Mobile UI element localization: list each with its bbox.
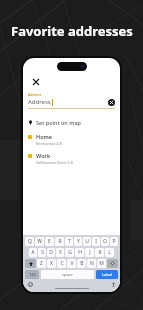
staticText: O: [103, 238, 107, 245]
staticText: W: [37, 238, 42, 245]
staticText: T: [68, 238, 71, 245]
other: Shift: [29, 262, 33, 266]
staticText: R: [58, 238, 62, 245]
staticText: Address: [28, 92, 42, 97]
staticText: Address: [28, 98, 51, 106]
staticText: K: [98, 249, 102, 256]
staticText: D: [49, 249, 53, 256]
staticText: P: [112, 238, 116, 245]
staticText: H: [78, 249, 82, 256]
button[interactable]: W: [35, 237, 44, 246]
button[interactable]: J: [85, 248, 94, 257]
button[interactable]: Close: [29, 75, 42, 88]
button[interactable]: R: [55, 237, 64, 246]
staticText: V: [70, 260, 74, 267]
staticText: L: [108, 249, 111, 256]
staticText: A: [31, 249, 35, 256]
staticText: 123: [29, 272, 36, 277]
button[interactable]: 123: [25, 270, 39, 279]
button[interactable]: Shift: [25, 259, 36, 268]
staticText: X: [50, 260, 53, 267]
button[interactable]: space: [41, 270, 94, 279]
button[interactable]: U: [83, 237, 91, 246]
staticText: Berzhanova 4-B: [36, 141, 62, 146]
button[interactable]: Backspace: [107, 259, 118, 268]
staticText: U: [85, 238, 89, 245]
staticText: Favorite addresses: [11, 22, 133, 40]
staticText: E: [48, 238, 51, 245]
button[interactable]: X: [47, 259, 56, 268]
button[interactable]: B: [77, 259, 86, 268]
button[interactable]: P: [110, 237, 118, 246]
button[interactable]: A: [29, 248, 37, 257]
button[interactable]: H: [75, 248, 84, 257]
button[interactable]: T: [65, 237, 73, 246]
staticText: S: [41, 249, 44, 256]
button[interactable]: Q: [25, 237, 34, 246]
button[interactable]: Clear: [108, 99, 115, 106]
button[interactable]: Work: [23, 151, 120, 166]
staticText: Work: [36, 152, 51, 159]
button[interactable]: S: [38, 248, 46, 257]
button[interactable]: N: [87, 259, 96, 268]
staticText: Set point on map: [36, 119, 81, 126]
button[interactable]: Set point on map: [23, 117, 120, 128]
button[interactable]: V: [67, 259, 76, 268]
button[interactable]: E: [45, 237, 54, 246]
staticText: B: [80, 260, 84, 267]
other: Backspace: [110, 261, 115, 266]
button[interactable]: Label: [96, 270, 118, 279]
staticText: G: [68, 249, 72, 256]
button[interactable]: Dictate: [110, 281, 116, 287]
button[interactable]: I: [92, 237, 100, 246]
staticText: Home: [36, 133, 53, 140]
button[interactable]: K: [95, 248, 104, 257]
staticText: C: [60, 260, 64, 267]
button[interactable]: Home: [23, 132, 120, 147]
staticText: Q: [28, 238, 32, 245]
staticText: N: [90, 260, 94, 267]
button[interactable]: Emoji: [27, 281, 33, 287]
button[interactable]: M: [97, 259, 106, 268]
staticText: J: [89, 249, 91, 256]
button[interactable]: Y: [74, 237, 82, 246]
staticText: space: [62, 272, 73, 277]
button[interactable]: Z: [37, 259, 46, 268]
staticText: Label: [102, 272, 113, 277]
other: Close: [33, 79, 39, 85]
staticText: Z: [40, 260, 43, 267]
button[interactable]: D: [47, 248, 55, 257]
button[interactable]: C: [57, 259, 66, 268]
staticText: M: [99, 260, 104, 267]
button[interactable]: F: [56, 248, 64, 257]
staticText: F: [59, 249, 62, 256]
staticText: I: [95, 238, 97, 245]
staticText: Y: [77, 238, 80, 245]
button[interactable]: O: [101, 237, 109, 246]
staticText: Valikhanova Street 2-B: [36, 160, 73, 165]
button[interactable]: G: [65, 248, 74, 257]
button[interactable]: L: [105, 248, 114, 257]
